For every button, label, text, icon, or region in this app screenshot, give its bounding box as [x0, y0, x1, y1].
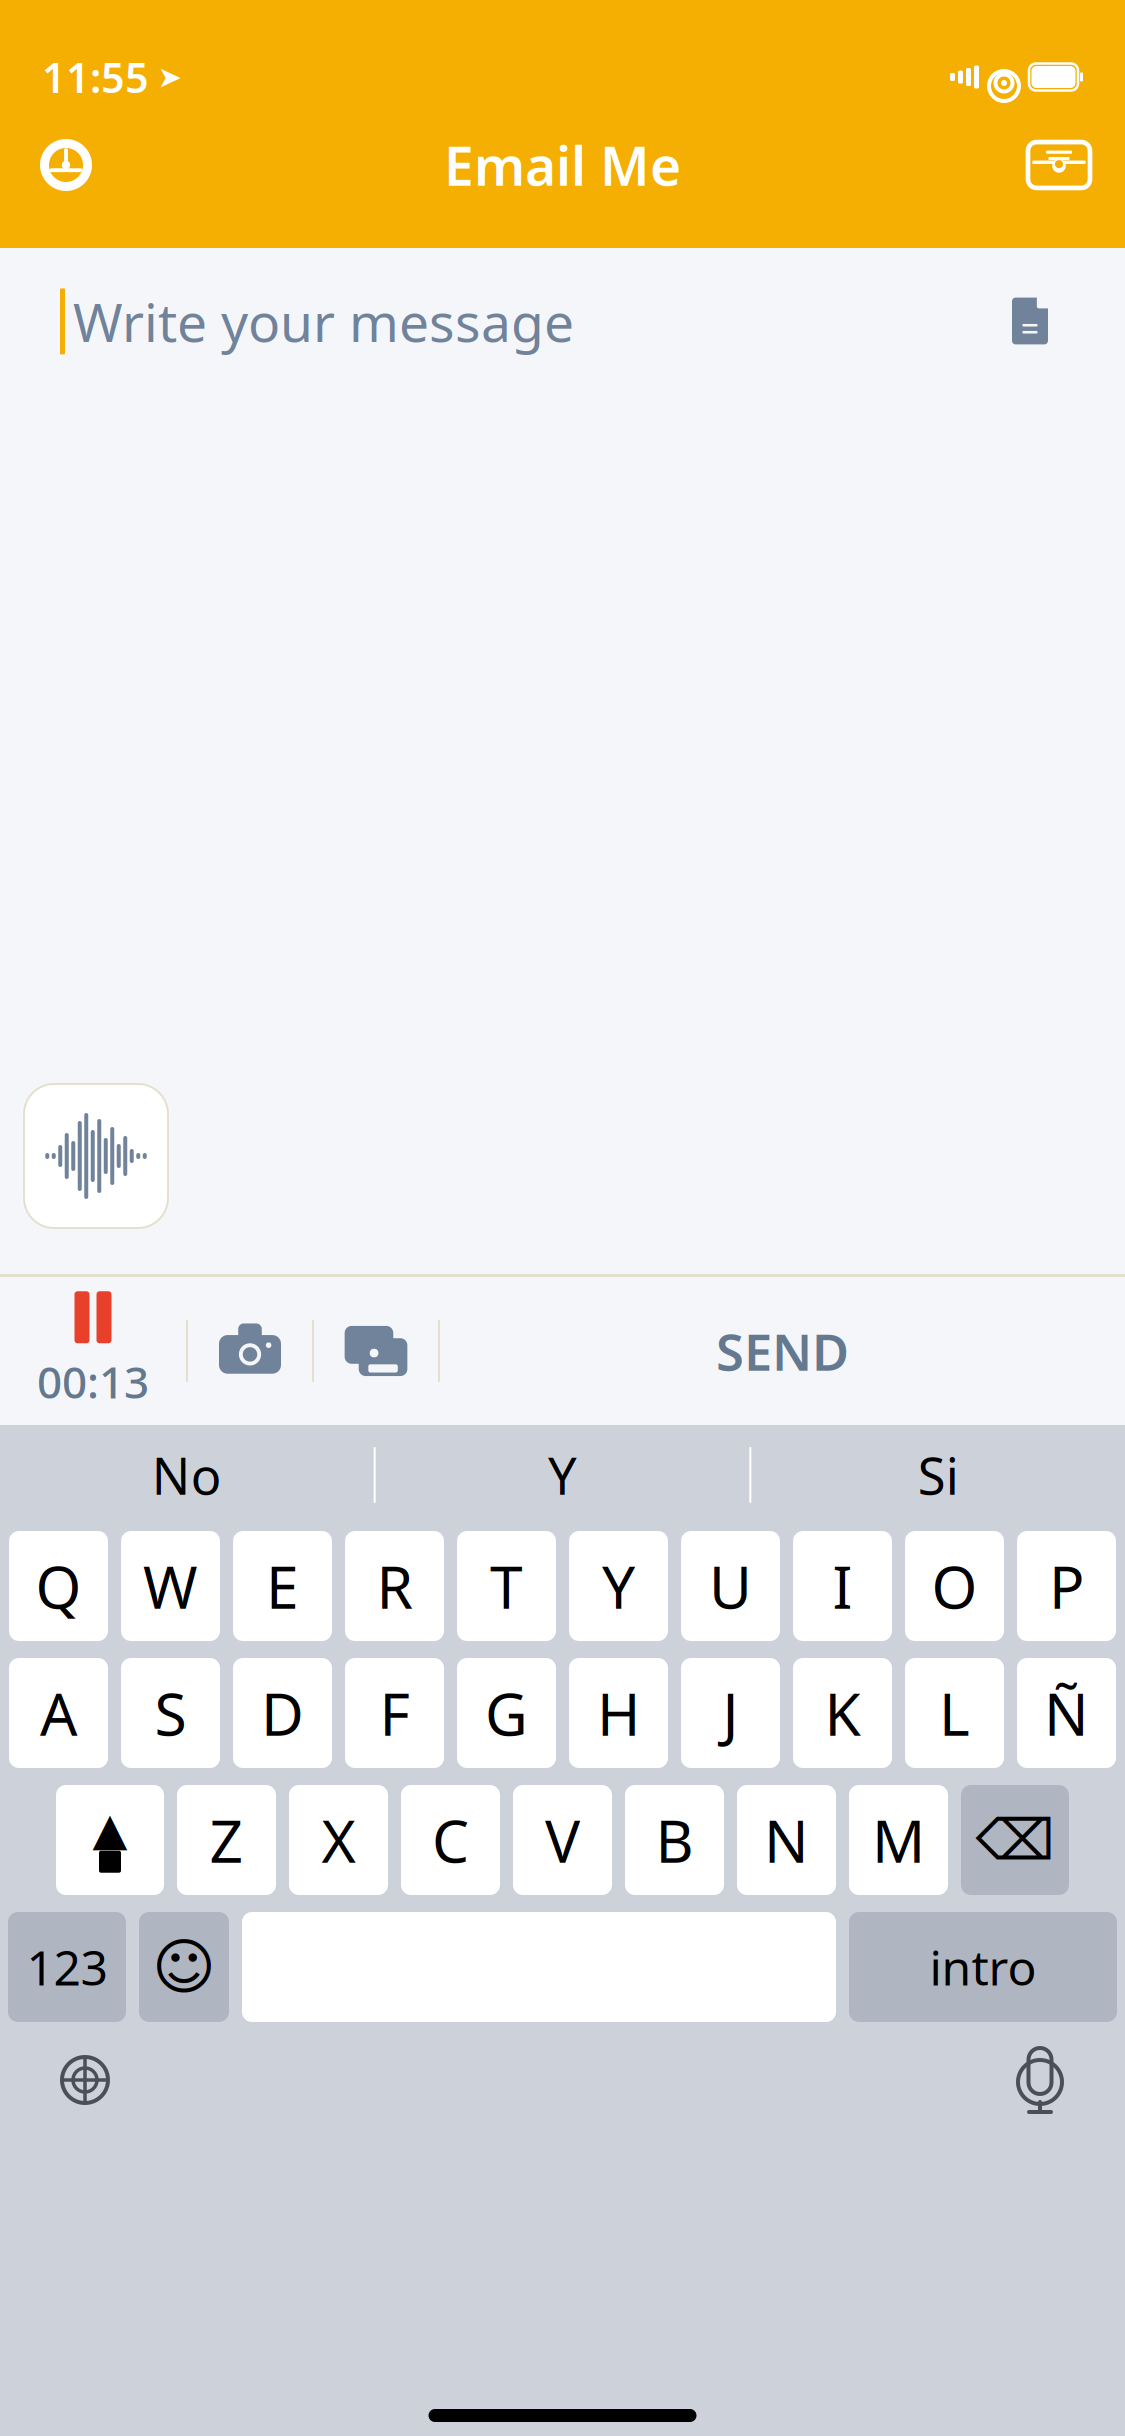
- button[interactable]: Next keyboard: [30, 2032, 140, 2128]
- staticText: 123: [26, 1935, 107, 1999]
- staticText: Email Me: [444, 130, 681, 200]
- button[interactable]: Z: [177, 1785, 276, 1895]
- button[interactable]: 123: [8, 1912, 126, 2022]
- staticText: V: [545, 1801, 580, 1879]
- button[interactable]: Q: [9, 1531, 108, 1641]
- button[interactable]: M: [849, 1785, 948, 1895]
- staticText: X: [321, 1801, 355, 1879]
- staticText: Q: [35, 1547, 81, 1625]
- button[interactable]: SEND: [440, 1277, 1125, 1425]
- button[interactable]: No: [0, 1429, 374, 1521]
- button[interactable]: intro: [849, 1912, 1117, 2022]
- button[interactable]: J: [681, 1658, 780, 1768]
- staticText: ➤: [157, 60, 182, 94]
- staticText: intro: [929, 1935, 1036, 1999]
- staticText: SEND: [716, 1317, 849, 1385]
- button[interactable]: H: [569, 1658, 668, 1768]
- button[interactable]: B: [625, 1785, 724, 1895]
- staticText: D: [261, 1674, 304, 1752]
- button[interactable]: Dictation: [985, 2032, 1095, 2128]
- button[interactable]: G: [457, 1658, 556, 1768]
- button[interactable]: Camera: [188, 1277, 312, 1425]
- staticText: No: [152, 1441, 222, 1509]
- staticText: Write your message: [73, 286, 574, 357]
- button[interactable]: A: [9, 1658, 108, 1768]
- button[interactable]: Photo library: [314, 1277, 438, 1425]
- button[interactable]: O: [905, 1531, 1004, 1641]
- button[interactable]: Y: [569, 1531, 668, 1641]
- button[interactable]: T: [457, 1531, 556, 1641]
- button[interactable]: Ñ: [1017, 1658, 1116, 1768]
- staticText: Ñ: [1044, 1674, 1089, 1752]
- button[interactable]: Delete: [961, 1785, 1069, 1895]
- button[interactable]: S: [121, 1658, 220, 1768]
- staticText: N: [764, 1801, 809, 1879]
- staticText: ⌫: [975, 1808, 1054, 1872]
- staticText: P: [1049, 1547, 1084, 1625]
- button[interactable]: F: [345, 1658, 444, 1768]
- staticText: A: [40, 1674, 77, 1752]
- button[interactable]: Shift: [56, 1785, 164, 1895]
- staticText: S: [154, 1674, 186, 1752]
- staticText: K: [824, 1674, 860, 1752]
- button[interactable]: D: [233, 1658, 332, 1768]
- staticText: Y: [548, 1441, 577, 1509]
- button[interactable]: N: [737, 1785, 836, 1895]
- staticText: ☺: [152, 1932, 216, 2002]
- staticText: W: [143, 1547, 198, 1625]
- staticText: U: [709, 1547, 752, 1625]
- staticText: 00:13: [37, 1352, 149, 1411]
- button[interactable]: R: [345, 1531, 444, 1641]
- staticText: B: [655, 1801, 693, 1879]
- staticText: H: [597, 1674, 640, 1752]
- staticText: Si: [918, 1441, 959, 1509]
- button[interactable]: E: [233, 1531, 332, 1641]
- button[interactable]: Voice recording attachment: [24, 1084, 168, 1228]
- staticText: Y: [602, 1547, 635, 1625]
- staticText: T: [490, 1547, 523, 1625]
- button[interactable]: I: [793, 1531, 892, 1641]
- staticText: Z: [209, 1801, 243, 1879]
- staticText: M: [872, 1801, 925, 1879]
- button[interactable]: Emoji: [139, 1912, 229, 2022]
- staticText: ▲: [92, 1803, 127, 1855]
- staticText: F: [379, 1674, 409, 1752]
- button[interactable]: L: [905, 1658, 1004, 1768]
- button[interactable]: U: [681, 1531, 780, 1641]
- button[interactable]: K: [793, 1658, 892, 1768]
- button[interactable]: W: [121, 1531, 220, 1641]
- button[interactable]: X: [289, 1785, 388, 1895]
- staticText: G: [485, 1674, 528, 1752]
- button[interactable]: Attach document: [995, 286, 1065, 356]
- button[interactable]: Inbox: [1015, 125, 1103, 205]
- button[interactable]: Y: [376, 1429, 749, 1521]
- staticText: C: [432, 1801, 469, 1879]
- button[interactable]: P: [1017, 1531, 1116, 1641]
- staticText: J: [722, 1674, 738, 1752]
- staticText: L: [939, 1674, 970, 1752]
- button[interactable]: Si: [751, 1429, 1125, 1521]
- staticText: R: [376, 1547, 412, 1625]
- button[interactable]: V: [513, 1785, 612, 1895]
- staticText: I: [832, 1547, 852, 1625]
- button[interactable]: Pause recording: [0, 1277, 186, 1425]
- staticText: 11:55: [42, 50, 149, 104]
- button[interactable]: Settings: [22, 125, 110, 205]
- button[interactable]: C: [401, 1785, 500, 1895]
- staticText: O: [931, 1547, 977, 1625]
- staticText: E: [266, 1547, 299, 1625]
